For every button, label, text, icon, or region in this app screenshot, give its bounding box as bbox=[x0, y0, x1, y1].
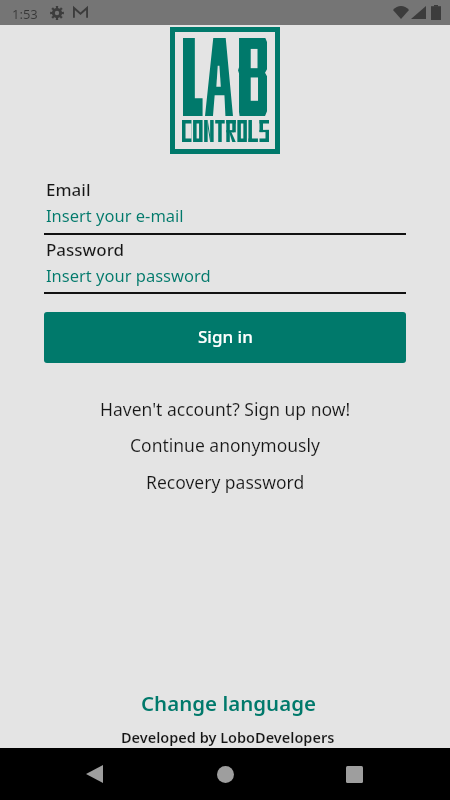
staticText: 1:53 bbox=[12, 5, 38, 23]
button[interactable]: Change language bbox=[0, 688, 450, 718]
staticText: Change language bbox=[141, 689, 316, 717]
button[interactable]: Continue anonymously bbox=[0, 432, 450, 458]
button[interactable]: Recovery password bbox=[0, 469, 450, 495]
staticText: Sign in bbox=[198, 325, 253, 348]
staticText: Password bbox=[46, 238, 125, 261]
button[interactable]: Sign in bbox=[44, 312, 406, 363]
staticText: Insert your password bbox=[46, 264, 211, 286]
staticText: Developed by LoboDevelopers bbox=[121, 727, 335, 747]
button[interactable]: Back bbox=[58, 748, 130, 800]
staticText: Email bbox=[46, 178, 91, 201]
button[interactable]: Home bbox=[189, 748, 261, 800]
staticText: Insert your e-mail bbox=[46, 204, 184, 226]
staticText: Continue anonymously bbox=[130, 433, 320, 457]
button[interactable]: Recent apps bbox=[318, 748, 390, 800]
staticText: Recovery password bbox=[146, 470, 305, 494]
button[interactable]: Haven't account? Sign up now! bbox=[0, 396, 450, 422]
staticText: Haven't account? Sign up now! bbox=[100, 397, 351, 421]
